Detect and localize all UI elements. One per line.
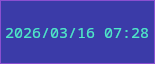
staticText: 2026/03/16 07:28 [5, 22, 150, 42]
button[interactable]: 2026/03/16 07:28 [0, 0, 155, 64]
